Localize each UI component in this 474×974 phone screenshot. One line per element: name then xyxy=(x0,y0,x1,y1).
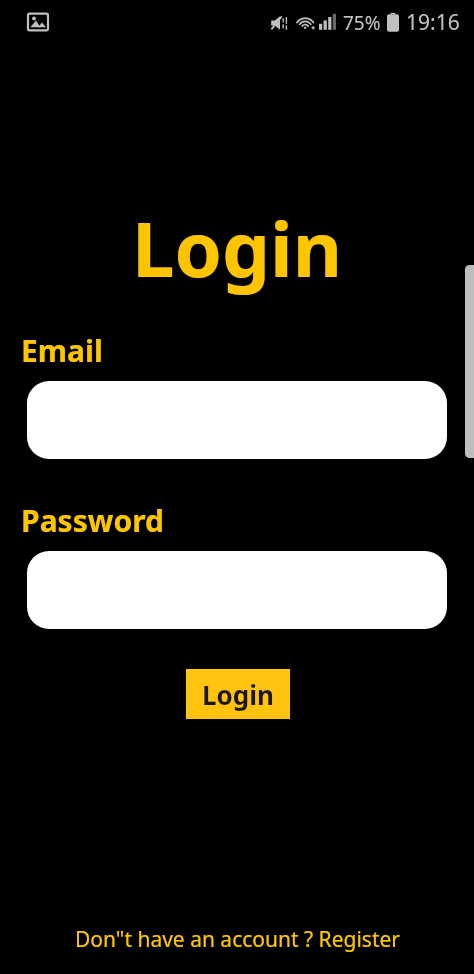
staticText: Email xyxy=(21,330,103,371)
button[interactable]: Login xyxy=(186,669,290,719)
staticText: Login xyxy=(202,677,274,712)
staticText: 19:16 xyxy=(406,8,460,37)
button[interactable]: Email input field xyxy=(27,381,447,459)
staticText: Password xyxy=(21,500,164,541)
button[interactable]: Don"t have an account ? Register xyxy=(0,925,474,954)
staticText: Login xyxy=(0,196,474,300)
staticText: 75% xyxy=(343,10,381,36)
staticText: Don"t have an account ? Register xyxy=(75,925,400,954)
button[interactable]: Password input field xyxy=(27,551,447,629)
